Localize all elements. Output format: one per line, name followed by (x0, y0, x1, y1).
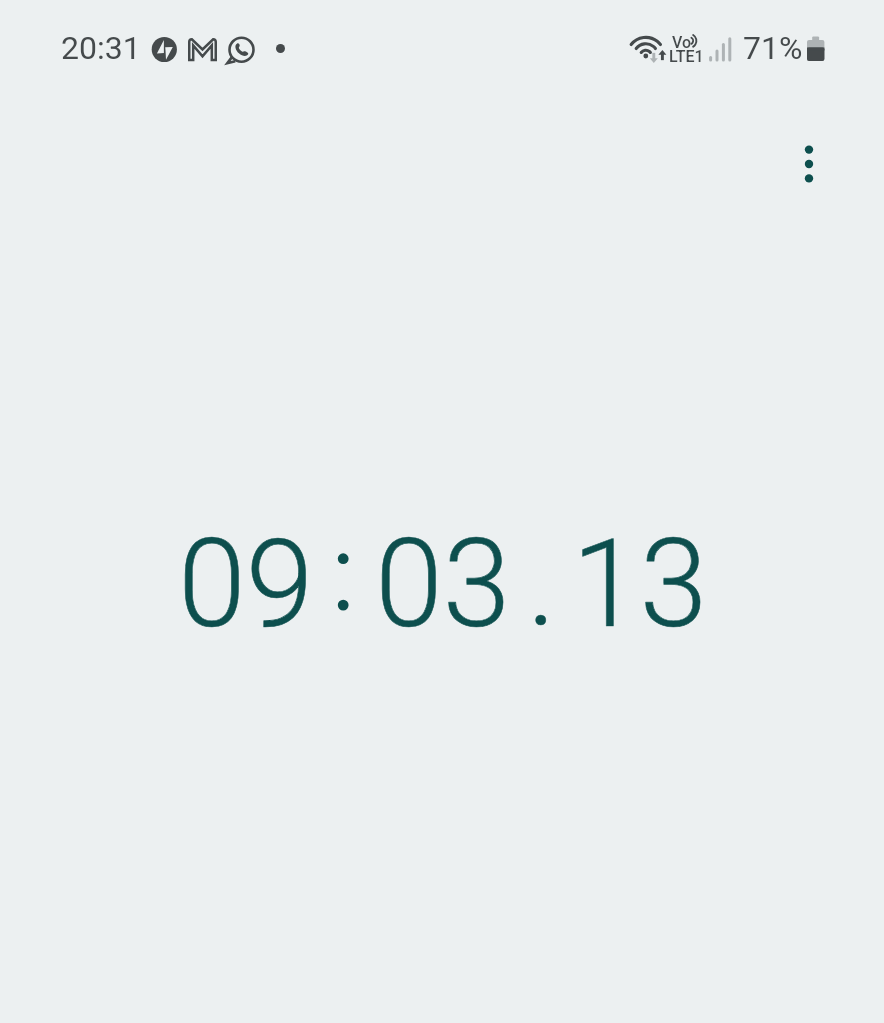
staticText: 03 (375, 513, 511, 656)
staticText: 13 (572, 513, 708, 656)
button[interactable]: More options (781, 136, 837, 192)
button[interactable]: 09 (0, 500, 884, 670)
staticText: Vo (672, 33, 692, 52)
staticText: 71% (743, 29, 803, 67)
staticText: . (527, 511, 557, 654)
staticText: 13 (572, 513, 708, 656)
staticText: 03 (375, 513, 511, 656)
staticText: . (527, 511, 557, 654)
staticText: 09 (178, 513, 314, 656)
staticText: LTE1 (669, 47, 704, 66)
staticText: 20:31 (61, 29, 141, 67)
staticText: 09 (178, 513, 314, 656)
